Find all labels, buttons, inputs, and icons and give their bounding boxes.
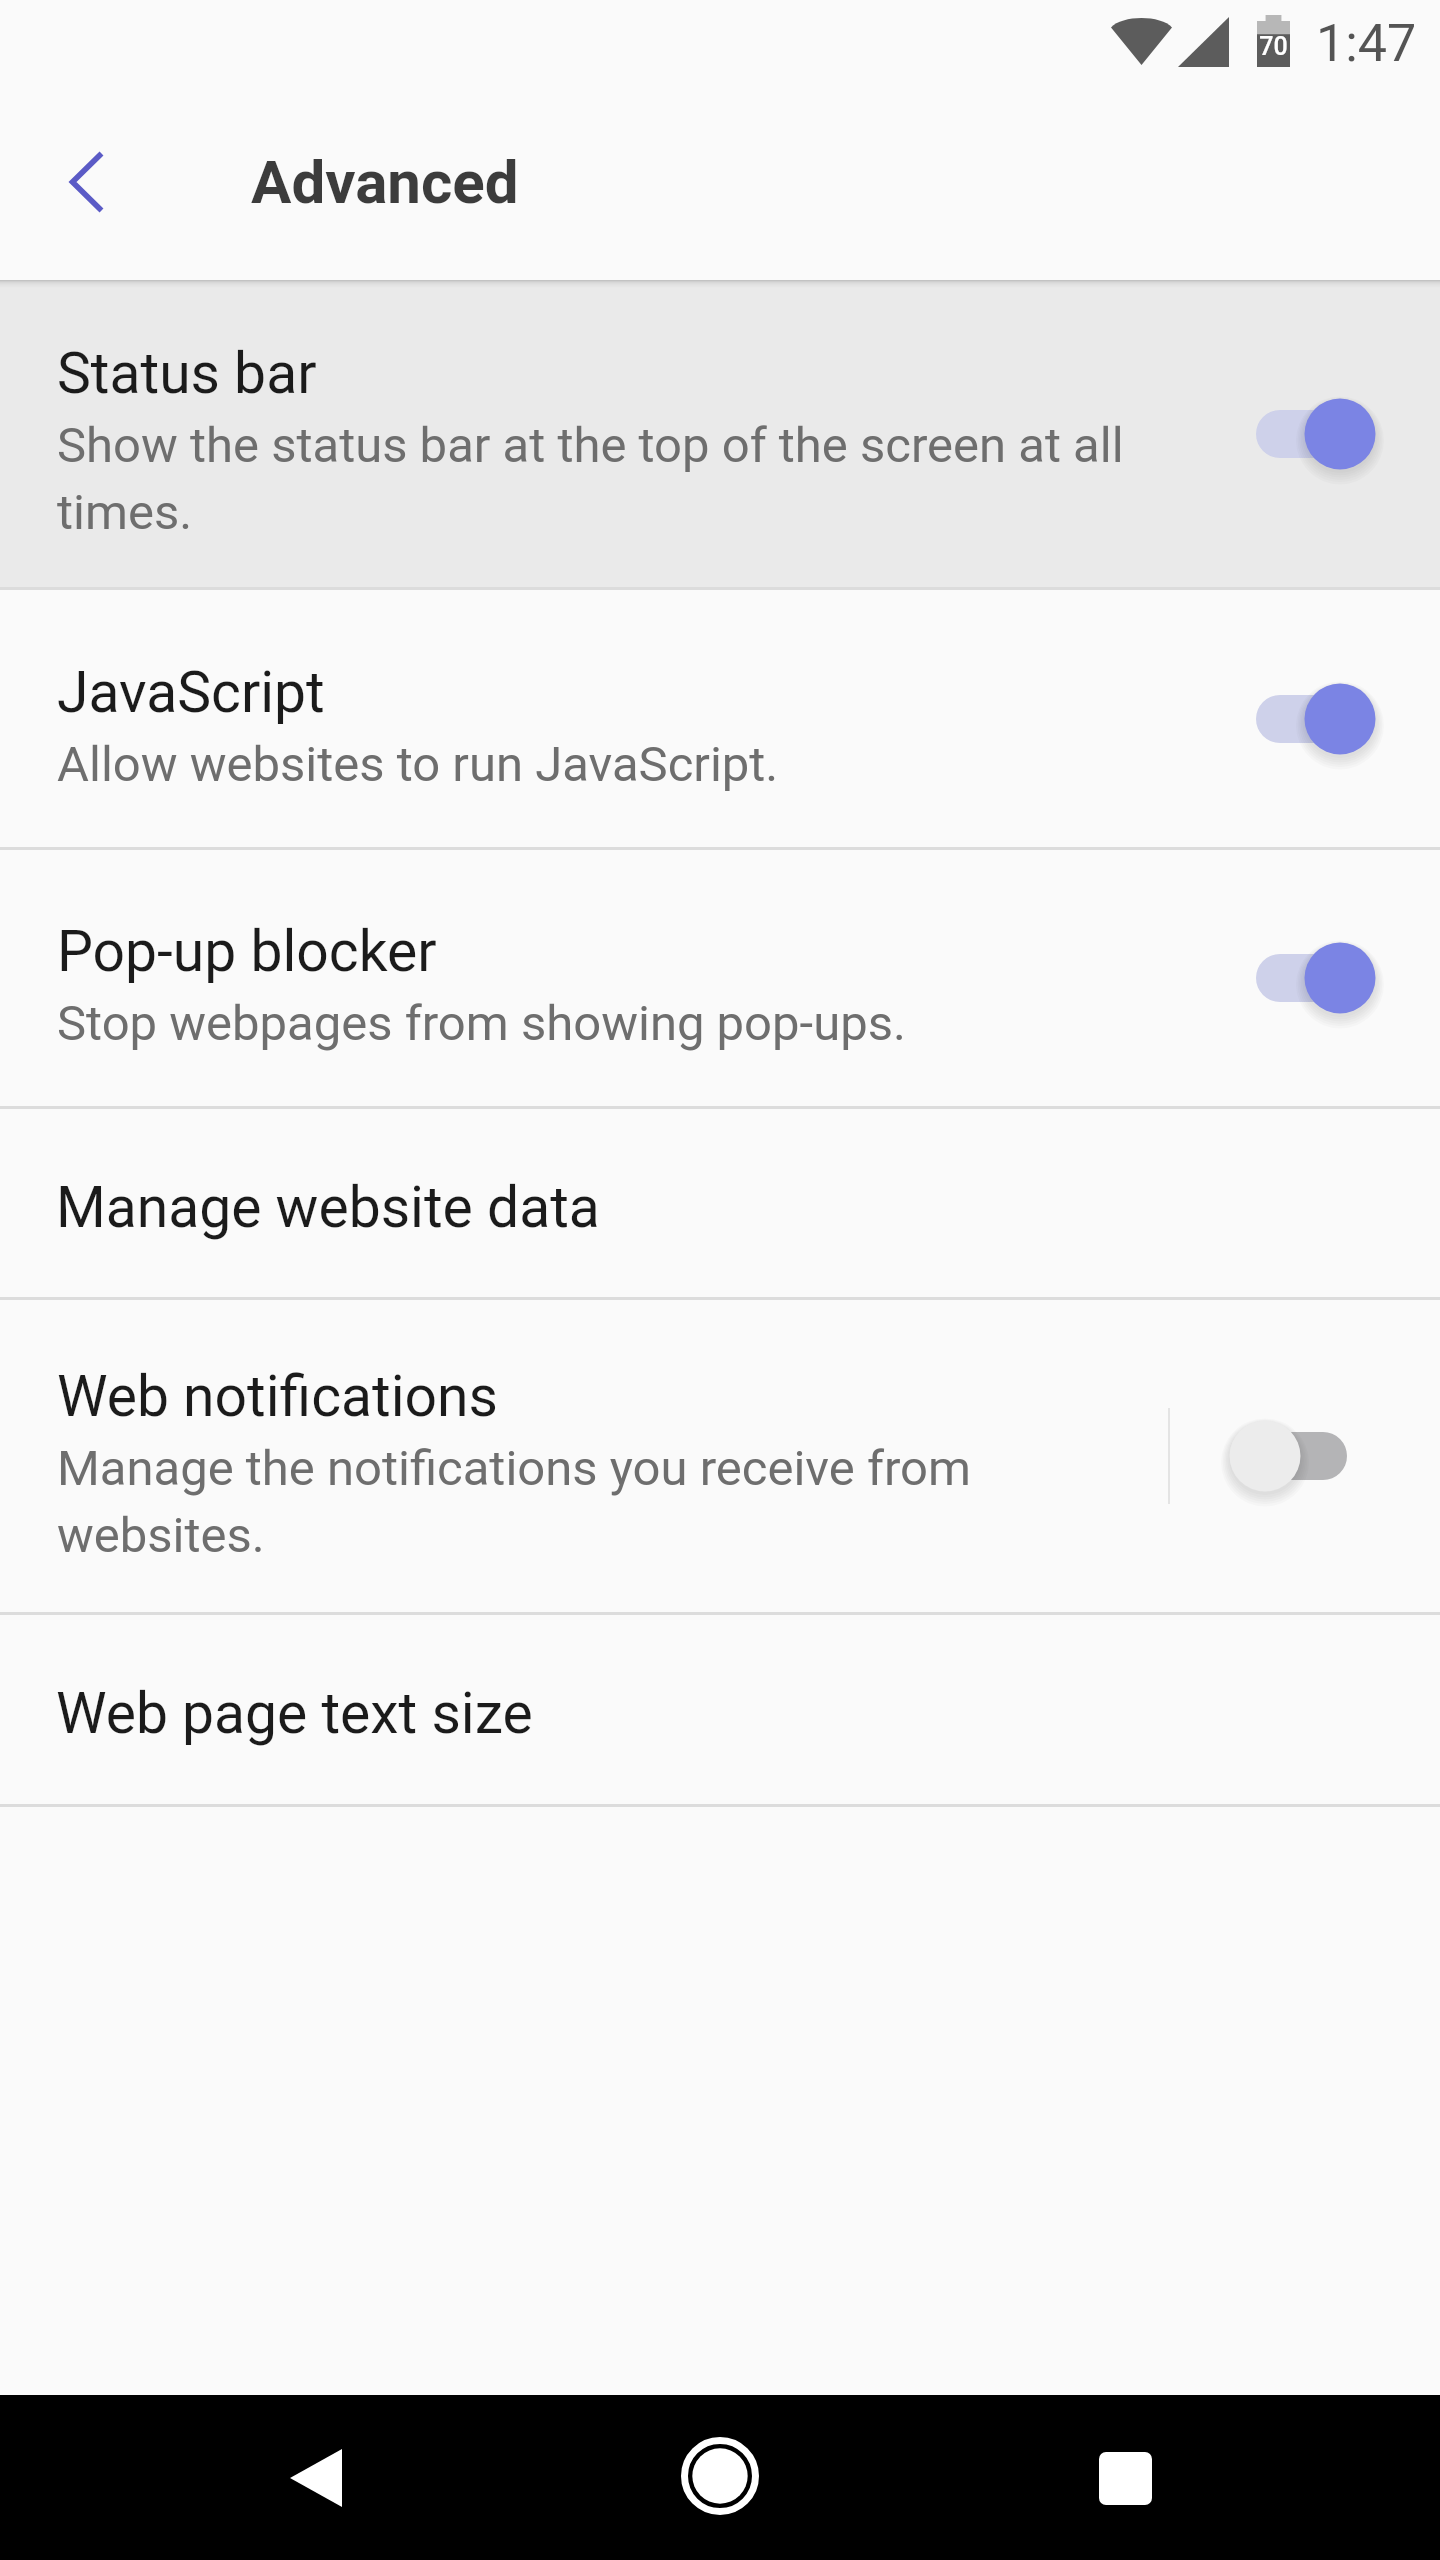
button[interactable]: Home	[650, 2408, 790, 2548]
staticText: Advanced	[251, 147, 519, 217]
staticText: Pop-up blocker	[57, 918, 437, 985]
button[interactable]: Manage website data	[0, 1109, 1440, 1297]
button[interactable]: Status bar toggle	[1236, 374, 1396, 494]
staticText: Manage the notifications you receive fro…	[57, 1440, 1169, 1566]
button[interactable]: Recent apps	[1055, 2408, 1195, 2548]
button[interactable]: Pop-up blocker toggle	[1236, 918, 1396, 1038]
button[interactable]: JavaScript toggle	[1236, 659, 1396, 779]
button[interactable]: Status bar	[0, 280, 1440, 587]
staticText: Show the status bar at the top of the sc…	[57, 417, 1169, 543]
staticText: Web page text size	[56, 1680, 533, 1747]
button[interactable]: Web page text size	[0, 1615, 1440, 1804]
staticText: Stop webpages from showing pop-ups.	[57, 995, 906, 1054]
staticText: 1:47	[1316, 13, 1417, 74]
button[interactable]: Web notifications toggle	[1207, 1396, 1367, 1516]
staticText: Web notifications	[57, 1363, 498, 1430]
button[interactable]: JavaScript	[0, 590, 1440, 847]
button[interactable]: Web notifications	[0, 1300, 1440, 1612]
button[interactable]: Navigate up	[25, 123, 145, 243]
staticText: Status bar	[57, 340, 317, 407]
button[interactable]: Pop-up blocker	[0, 850, 1440, 1106]
staticText: 70	[1259, 32, 1288, 61]
staticText: Allow websites to run JavaScript.	[57, 736, 779, 795]
button[interactable]: Back	[246, 2408, 386, 2548]
staticText: Manage website data	[56, 1174, 600, 1241]
staticText: JavaScript	[57, 659, 325, 726]
